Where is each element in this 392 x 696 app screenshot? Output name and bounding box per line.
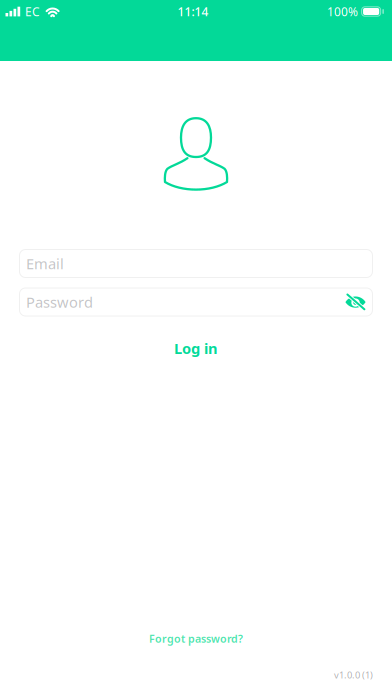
staticText: v1.0.0 (1) (334, 669, 373, 681)
button[interactable]: Show password (345, 293, 366, 310)
button[interactable]: Forgot password? (0, 613, 392, 664)
staticText: Email (26, 254, 64, 273)
staticText: Forgot password? (149, 631, 243, 646)
staticText: EC (25, 3, 40, 19)
staticText: Password (26, 292, 93, 312)
staticText: Log in (174, 338, 218, 358)
staticText: 11:14 (178, 3, 209, 19)
button[interactable]: Log in (0, 327, 392, 369)
staticText: 100% (327, 3, 358, 19)
